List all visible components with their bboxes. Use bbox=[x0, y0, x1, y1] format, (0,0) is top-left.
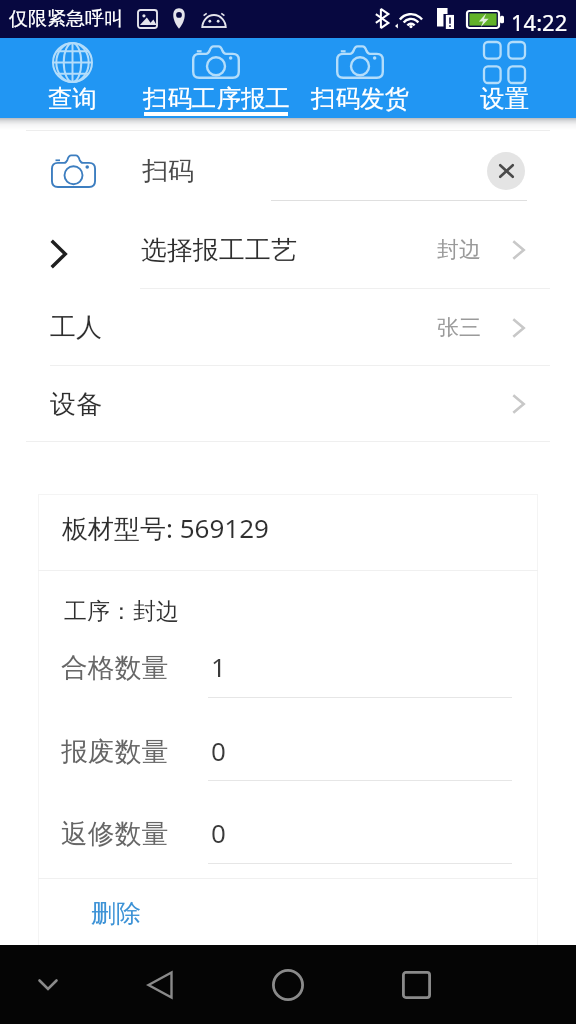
button[interactable]: 扫码工序报工 bbox=[144, 38, 288, 118]
staticText: 扫码工序报工 bbox=[143, 83, 290, 114]
button[interactable]: Hide keyboard bbox=[0, 945, 96, 1024]
button[interactable]: 选择报工工艺 bbox=[0, 211, 576, 289]
button[interactable]: 扫码发货 bbox=[288, 38, 432, 118]
button[interactable]: Home bbox=[224, 945, 352, 1024]
staticText: 扫码 bbox=[142, 155, 194, 188]
button[interactable]: Clear bbox=[487, 152, 525, 190]
staticText: 0 bbox=[211, 733, 226, 768]
staticText: 14:22 bbox=[511, 7, 568, 37]
button[interactable]: 设置 bbox=[432, 38, 576, 118]
staticText: 返修数量 bbox=[61, 817, 169, 851]
button[interactable]: 工人 bbox=[0, 289, 576, 366]
button[interactable]: 查询 bbox=[0, 38, 144, 118]
staticText: 封边 bbox=[437, 236, 481, 264]
staticText: 选择报工工艺 bbox=[141, 234, 297, 267]
staticText: 1 bbox=[211, 649, 226, 684]
staticText: 报废数量 bbox=[61, 735, 169, 769]
staticText: 扫码发货 bbox=[311, 83, 409, 114]
staticText: 查询 bbox=[48, 83, 97, 114]
button[interactable]: 扫码 bbox=[0, 131, 576, 211]
staticText: 工序：封边 bbox=[64, 597, 179, 626]
button[interactable]: 删除 bbox=[38, 879, 538, 947]
staticText: 合格数量 bbox=[61, 651, 169, 685]
button[interactable]: Recents bbox=[352, 945, 480, 1024]
staticText: 删除 bbox=[91, 898, 141, 929]
staticText: 设备 bbox=[50, 388, 102, 421]
staticText: 0 bbox=[211, 815, 226, 850]
staticText: 张三 bbox=[437, 314, 481, 342]
staticText: 设置 bbox=[480, 83, 529, 114]
button[interactable]: 设备 bbox=[0, 366, 576, 442]
staticText: 板材型号: 569129 bbox=[62, 510, 269, 546]
button[interactable]: Back bbox=[96, 945, 224, 1024]
staticText: 工人 bbox=[50, 311, 102, 344]
staticText: 仅限紧急呼叫 bbox=[9, 7, 123, 31]
